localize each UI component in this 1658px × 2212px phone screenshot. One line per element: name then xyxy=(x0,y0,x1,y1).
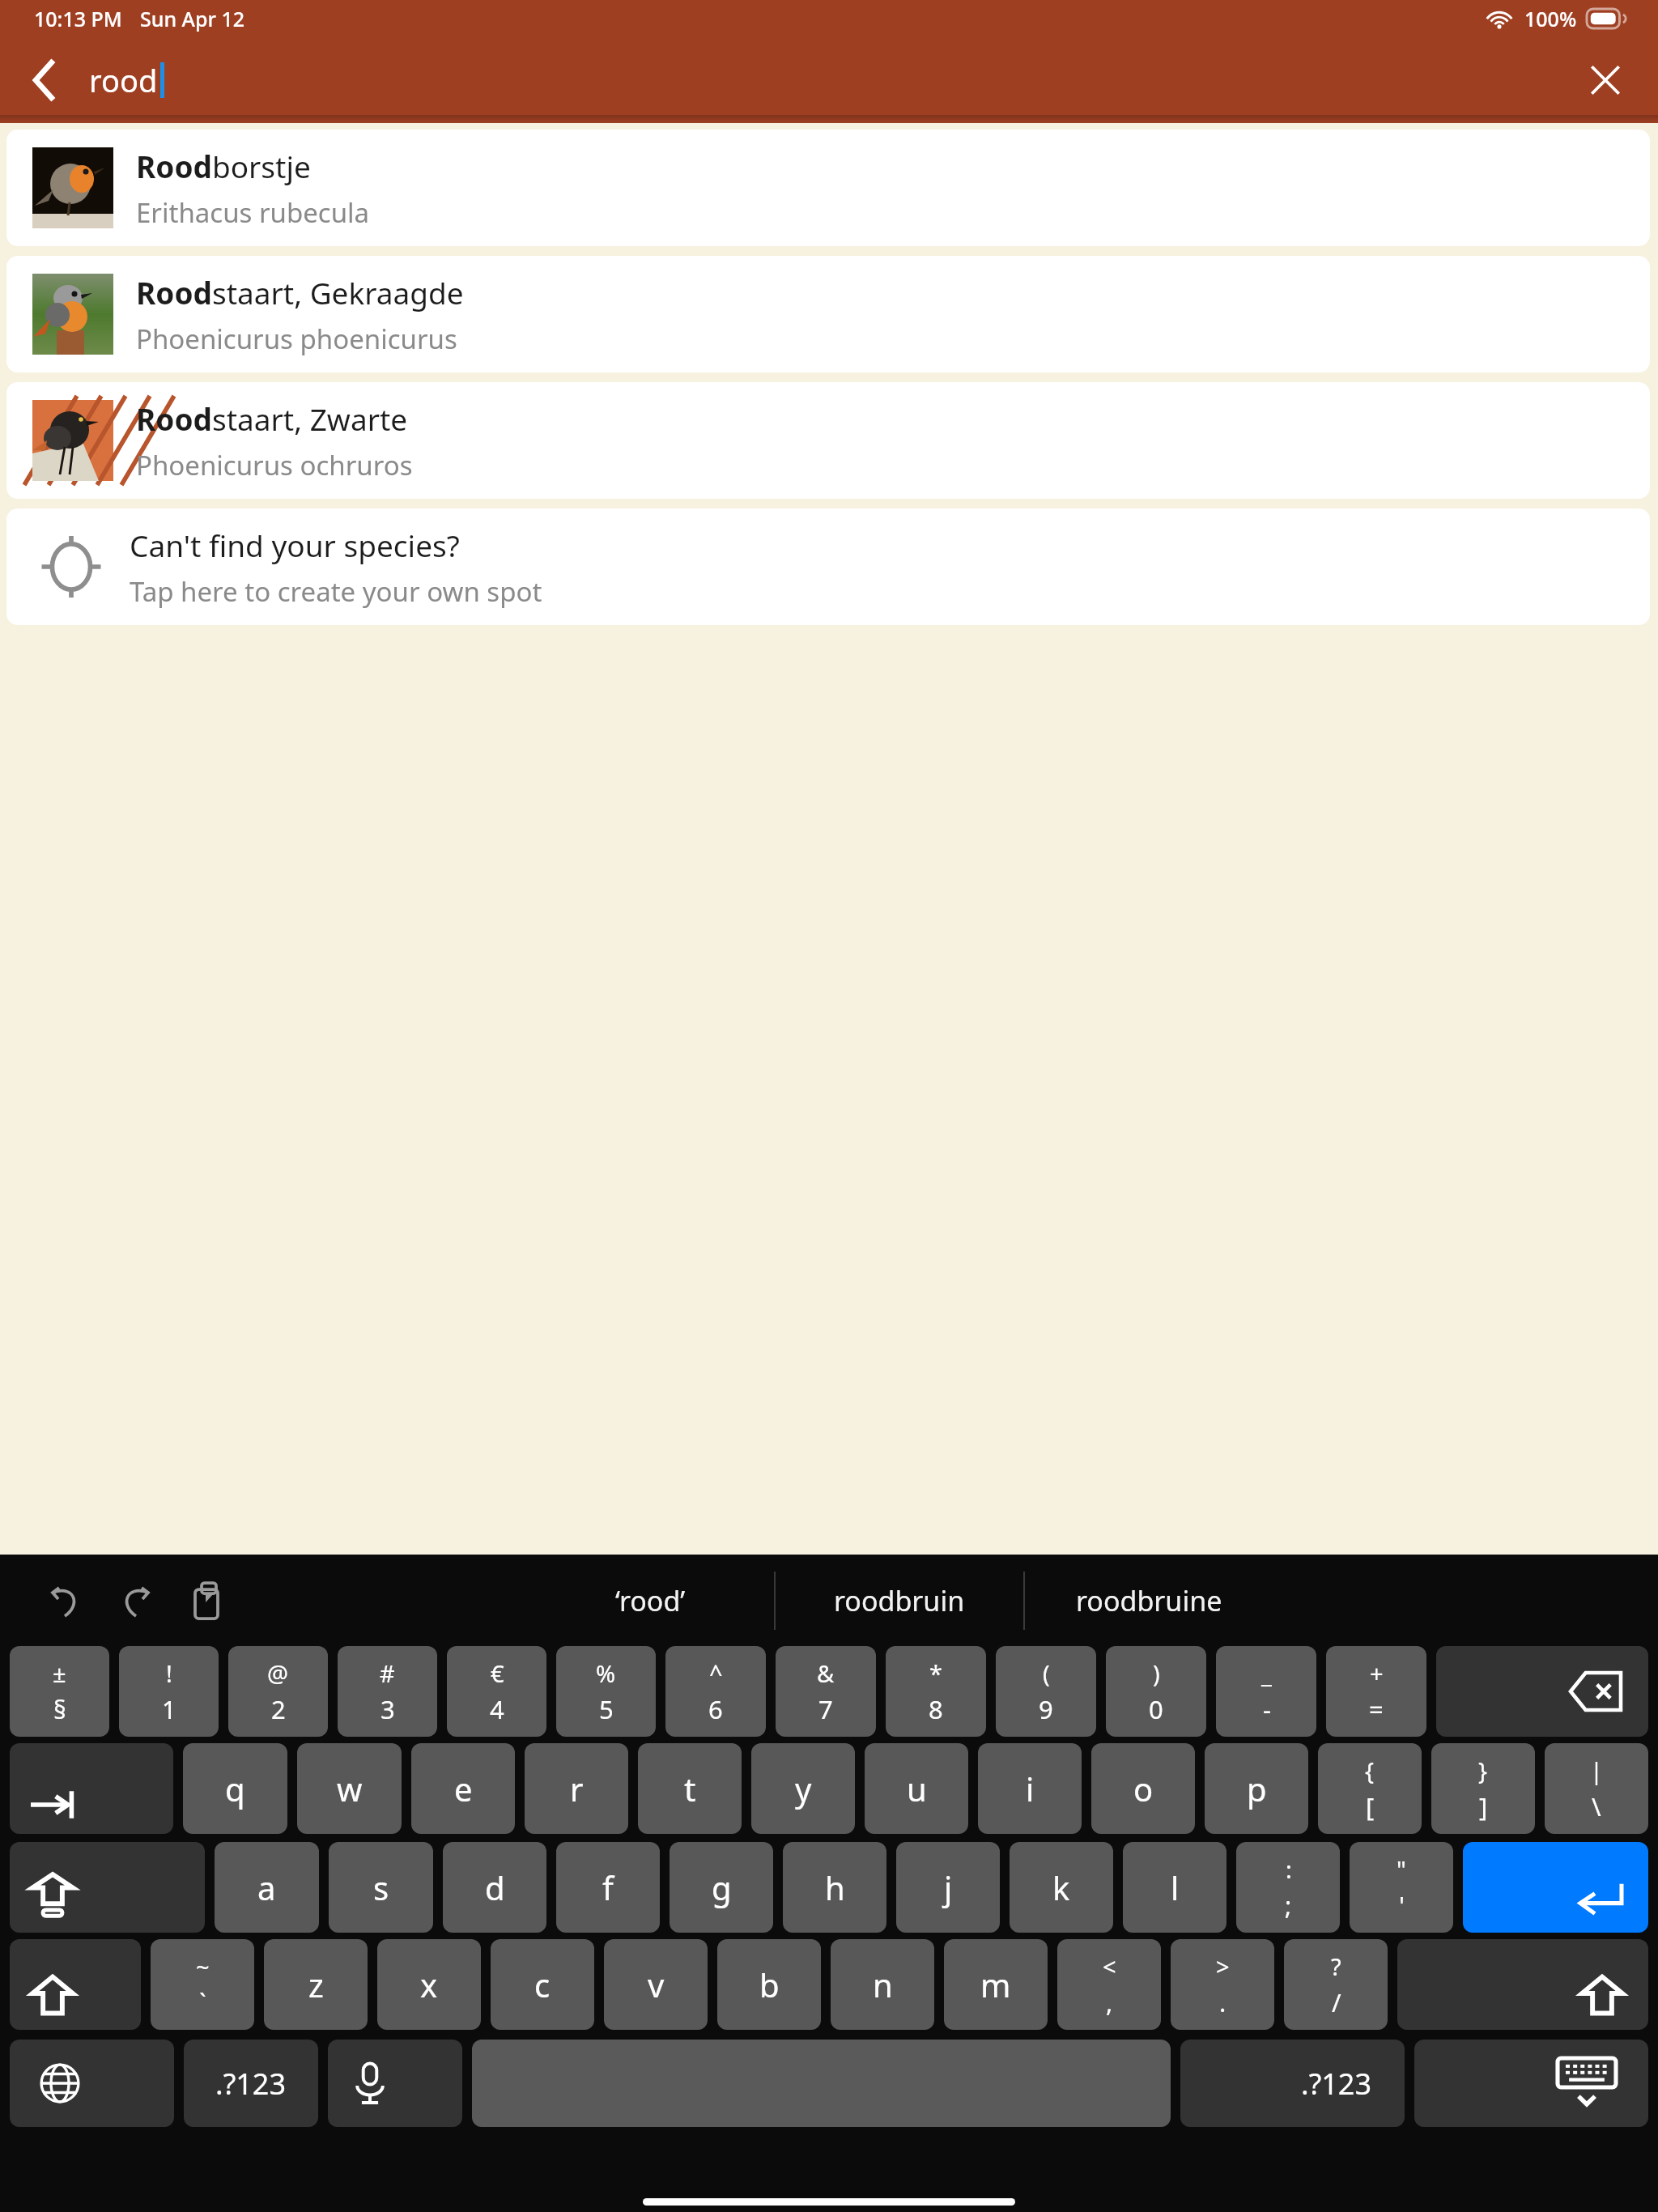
button[interactable]: Roodstaart, Zwarte xyxy=(6,382,1650,499)
staticText: u xyxy=(907,1767,927,1810)
button[interactable]: r xyxy=(525,1743,628,1834)
staticText: ` xyxy=(199,1985,206,2019)
button[interactable]: | xyxy=(1545,1743,1648,1834)
button[interactable]: Shift xyxy=(1397,1939,1648,2030)
button[interactable]: t xyxy=(638,1743,742,1834)
staticText: | xyxy=(1590,1755,1603,1786)
button[interactable]: n xyxy=(831,1939,934,2030)
staticText: 10:13 PM xyxy=(34,5,122,32)
button[interactable]: z xyxy=(264,1939,368,2030)
staticText: / xyxy=(1332,1985,1341,2019)
button[interactable]: Backspace xyxy=(1436,1646,1648,1737)
button[interactable]: > xyxy=(1171,1939,1274,2030)
button[interactable]: v xyxy=(604,1939,708,2030)
staticText: > xyxy=(1216,1950,1230,1982)
button[interactable]: q xyxy=(183,1743,287,1834)
button[interactable]: ± xyxy=(10,1646,109,1737)
staticText: ) xyxy=(1153,1657,1160,1689)
button[interactable]: a xyxy=(215,1842,319,1933)
button[interactable]: % xyxy=(556,1646,656,1737)
button[interactable]: Return xyxy=(1463,1842,1648,1933)
button[interactable]: : xyxy=(1236,1842,1340,1933)
button[interactable]: Roodstaart, Gekraagde xyxy=(6,256,1650,372)
button[interactable]: } xyxy=(1431,1743,1535,1834)
button[interactable]: ) xyxy=(1106,1646,1206,1737)
staticText: Phoenicurus ochruros xyxy=(136,447,413,483)
button[interactable]: Caps lock xyxy=(10,1842,205,1933)
button[interactable]: Numbers xyxy=(1180,2040,1405,2127)
staticText: z xyxy=(308,1963,324,2006)
button[interactable]: i xyxy=(978,1743,1082,1834)
button[interactable]: j xyxy=(896,1842,1000,1933)
staticText: ] xyxy=(1479,1789,1488,1823)
staticText: < xyxy=(1103,1950,1116,1982)
staticText: @ xyxy=(267,1657,289,1689)
button[interactable]: ~ xyxy=(151,1939,254,2030)
button[interactable]: < xyxy=(1057,1939,1161,2030)
button[interactable]: _ xyxy=(1216,1646,1316,1737)
button[interactable]: Redo xyxy=(105,1569,168,1632)
staticText: - xyxy=(1263,1692,1271,1726)
button[interactable]: roodbruine xyxy=(1025,1555,1273,1646)
button[interactable]: h xyxy=(783,1842,886,1933)
button[interactable]: k xyxy=(1010,1842,1113,1933)
button[interactable]: Tab xyxy=(10,1743,173,1834)
staticText: 0 xyxy=(1149,1692,1163,1726)
staticText: j xyxy=(944,1865,953,1909)
button[interactable]: e xyxy=(411,1743,515,1834)
button[interactable]: * xyxy=(886,1646,986,1737)
staticText: . xyxy=(1219,1985,1226,2019)
button[interactable]: p xyxy=(1205,1743,1308,1834)
button[interactable]: Hide keyboard xyxy=(1414,2040,1648,2127)
button[interactable]: o xyxy=(1091,1743,1195,1834)
button[interactable]: ‘rood’ xyxy=(526,1555,774,1646)
button[interactable]: + xyxy=(1326,1646,1426,1737)
staticText: d xyxy=(485,1865,505,1909)
button[interactable]: Numbers xyxy=(184,2040,318,2127)
button[interactable]: Shift xyxy=(10,1939,141,2030)
button[interactable]: ^ xyxy=(665,1646,766,1737)
staticText: Phoenicurus phoenicurus xyxy=(136,321,457,357)
button[interactable]: Can't find your species? xyxy=(6,508,1650,625)
button[interactable]: ( xyxy=(996,1646,1096,1737)
button[interactable]: Change keyboard xyxy=(10,2040,174,2127)
button[interactable]: @ xyxy=(228,1646,328,1737)
staticText: n xyxy=(873,1963,893,2006)
button[interactable]: Dictate xyxy=(328,2040,462,2127)
button[interactable]: Roodborstje xyxy=(6,130,1650,246)
button[interactable]: ? xyxy=(1284,1939,1388,2030)
staticText: q xyxy=(225,1767,245,1810)
button[interactable]: Clear search xyxy=(1553,37,1658,123)
button[interactable]: d xyxy=(443,1842,546,1933)
button[interactable]: g xyxy=(670,1842,773,1933)
button[interactable]: " xyxy=(1350,1842,1453,1933)
button[interactable]: & xyxy=(776,1646,876,1737)
button[interactable]: l xyxy=(1123,1842,1226,1933)
staticText: b xyxy=(759,1963,780,2006)
button[interactable]: x xyxy=(377,1939,481,2030)
staticText: 3 xyxy=(380,1692,395,1726)
button[interactable]: b xyxy=(717,1939,821,2030)
button[interactable]: w xyxy=(297,1743,402,1834)
staticText: ‘rood’ xyxy=(615,1582,686,1619)
staticText: } xyxy=(1478,1755,1488,1786)
button[interactable]: y xyxy=(751,1743,855,1834)
button[interactable]: m xyxy=(944,1939,1048,2030)
button[interactable]: # xyxy=(338,1646,437,1737)
button[interactable]: Paste xyxy=(178,1569,241,1632)
button[interactable]: ! xyxy=(119,1646,219,1737)
button[interactable]: € xyxy=(447,1646,546,1737)
button[interactable]: { xyxy=(1318,1743,1422,1834)
button[interactable]: u xyxy=(865,1743,968,1834)
button[interactable]: roodbruin xyxy=(776,1555,1023,1646)
button[interactable]: Undo xyxy=(32,1569,96,1632)
staticText: m xyxy=(980,1963,1011,2006)
button[interactable]: f xyxy=(556,1842,660,1933)
button[interactable]: Back xyxy=(0,37,89,123)
staticText: ^ xyxy=(709,1657,723,1689)
button[interactable]: c xyxy=(491,1939,594,2030)
button[interactable]: s xyxy=(329,1842,433,1933)
staticText: 5 xyxy=(599,1692,614,1726)
staticText: [ xyxy=(1366,1789,1375,1823)
